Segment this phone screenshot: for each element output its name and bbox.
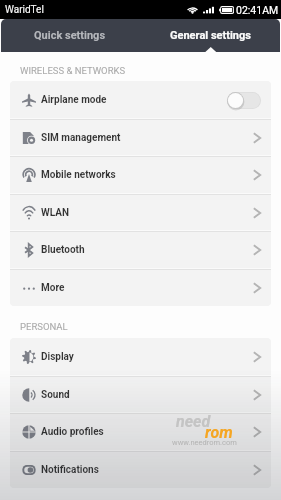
button[interactable]: Quick settings [0, 19, 140, 52]
staticText: Audio profiles [41, 426, 104, 438]
button[interactable]: SIM management [10, 119, 271, 157]
button[interactable]: Airplane mode toggle [227, 92, 261, 109]
staticText: Airplane mode [41, 94, 107, 106]
button[interactable]: Display [10, 338, 271, 376]
staticText: WaridTel [5, 4, 44, 16]
button[interactable]: Bluetooth [10, 231, 271, 269]
staticText: PERSONAL [20, 321, 68, 332]
button[interactable]: Sound [10, 376, 271, 414]
staticText: Notifications [41, 464, 99, 476]
staticText: WLAN [41, 207, 70, 219]
button[interactable]: More [10, 269, 271, 306]
staticText: WIRELESS & NETWORKS [20, 65, 126, 76]
staticText: Display [41, 351, 74, 363]
staticText: More [41, 282, 65, 294]
button[interactable]: WLAN [10, 194, 271, 232]
button[interactable]: General settings [140, 19, 281, 52]
staticText: General settings [170, 29, 251, 42]
staticText: SIM management [41, 132, 121, 144]
button[interactable]: Airplane mode [10, 81, 271, 119]
staticText: Mobile networks [41, 169, 116, 181]
staticText: need [176, 412, 211, 431]
staticText: 02:41AM [236, 4, 279, 16]
staticText: www.needrom.com [172, 438, 237, 447]
staticText: rom [205, 423, 233, 442]
staticText: Quick settings [34, 29, 106, 42]
button[interactable]: Audio profiles [10, 413, 271, 451]
staticText: Sound [41, 389, 70, 401]
button[interactable]: Mobile networks [10, 156, 271, 194]
button[interactable]: Notifications [10, 451, 271, 488]
staticText: Bluetooth [41, 244, 85, 256]
